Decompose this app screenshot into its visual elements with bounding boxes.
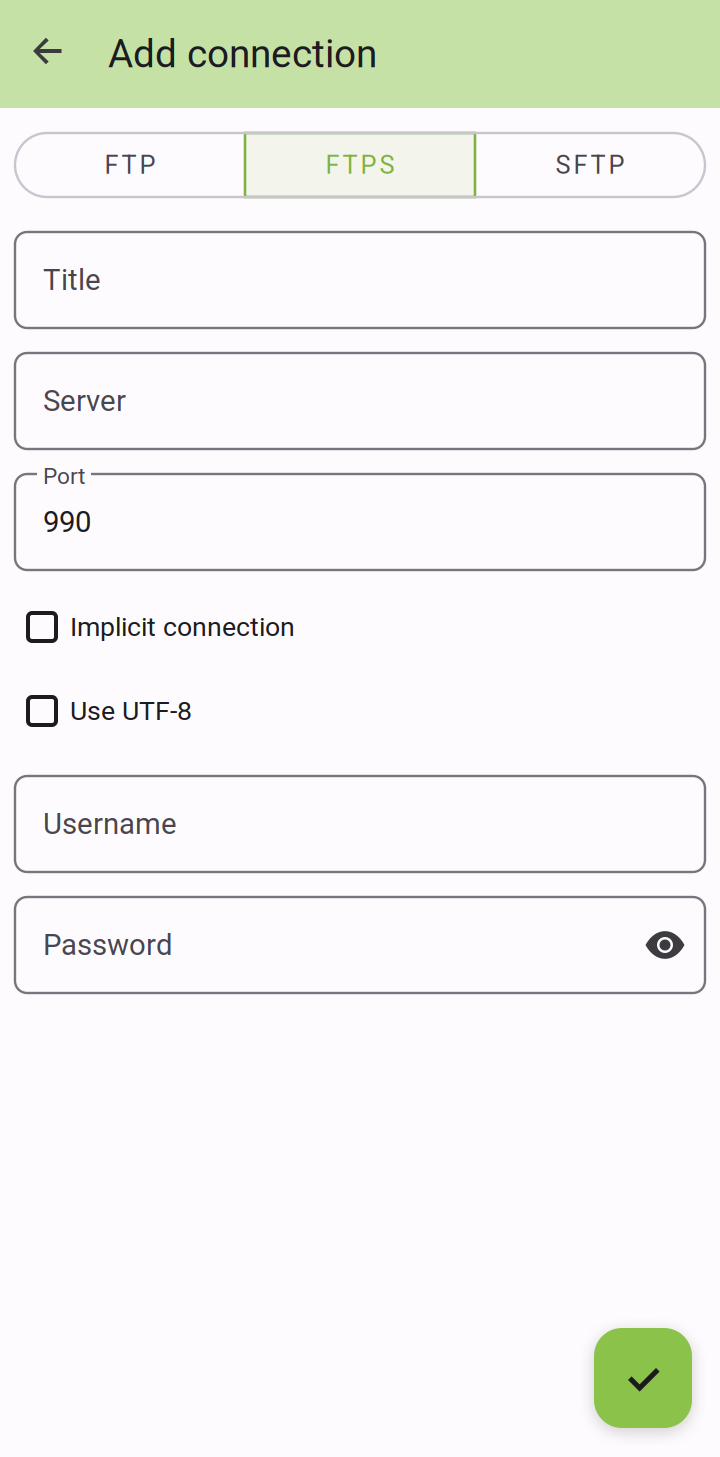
button[interactable]: Back [0,0,94,108]
staticText: Title [43,263,101,297]
button[interactable]: S F T P [475,133,705,197]
staticText: S F T P [555,150,624,180]
staticText: Password [43,928,173,962]
staticText: Use UTF-8 [70,695,192,727]
staticText: Server [43,384,126,418]
staticText: 990 [43,505,91,539]
staticText: Implicit connection [70,611,295,643]
staticText: Add connection [108,31,377,77]
staticText: Username [43,807,177,841]
staticText: Port [43,463,85,490]
button[interactable]: F T P S [245,133,475,197]
button[interactable]: F T P [15,133,245,197]
button[interactable]: Save [594,1328,692,1428]
button[interactable]: Use UTF-8 [0,685,720,737]
button[interactable]: Implicit connection [0,601,720,653]
staticText: F T P [104,150,155,180]
staticText: F T P S [325,150,394,180]
